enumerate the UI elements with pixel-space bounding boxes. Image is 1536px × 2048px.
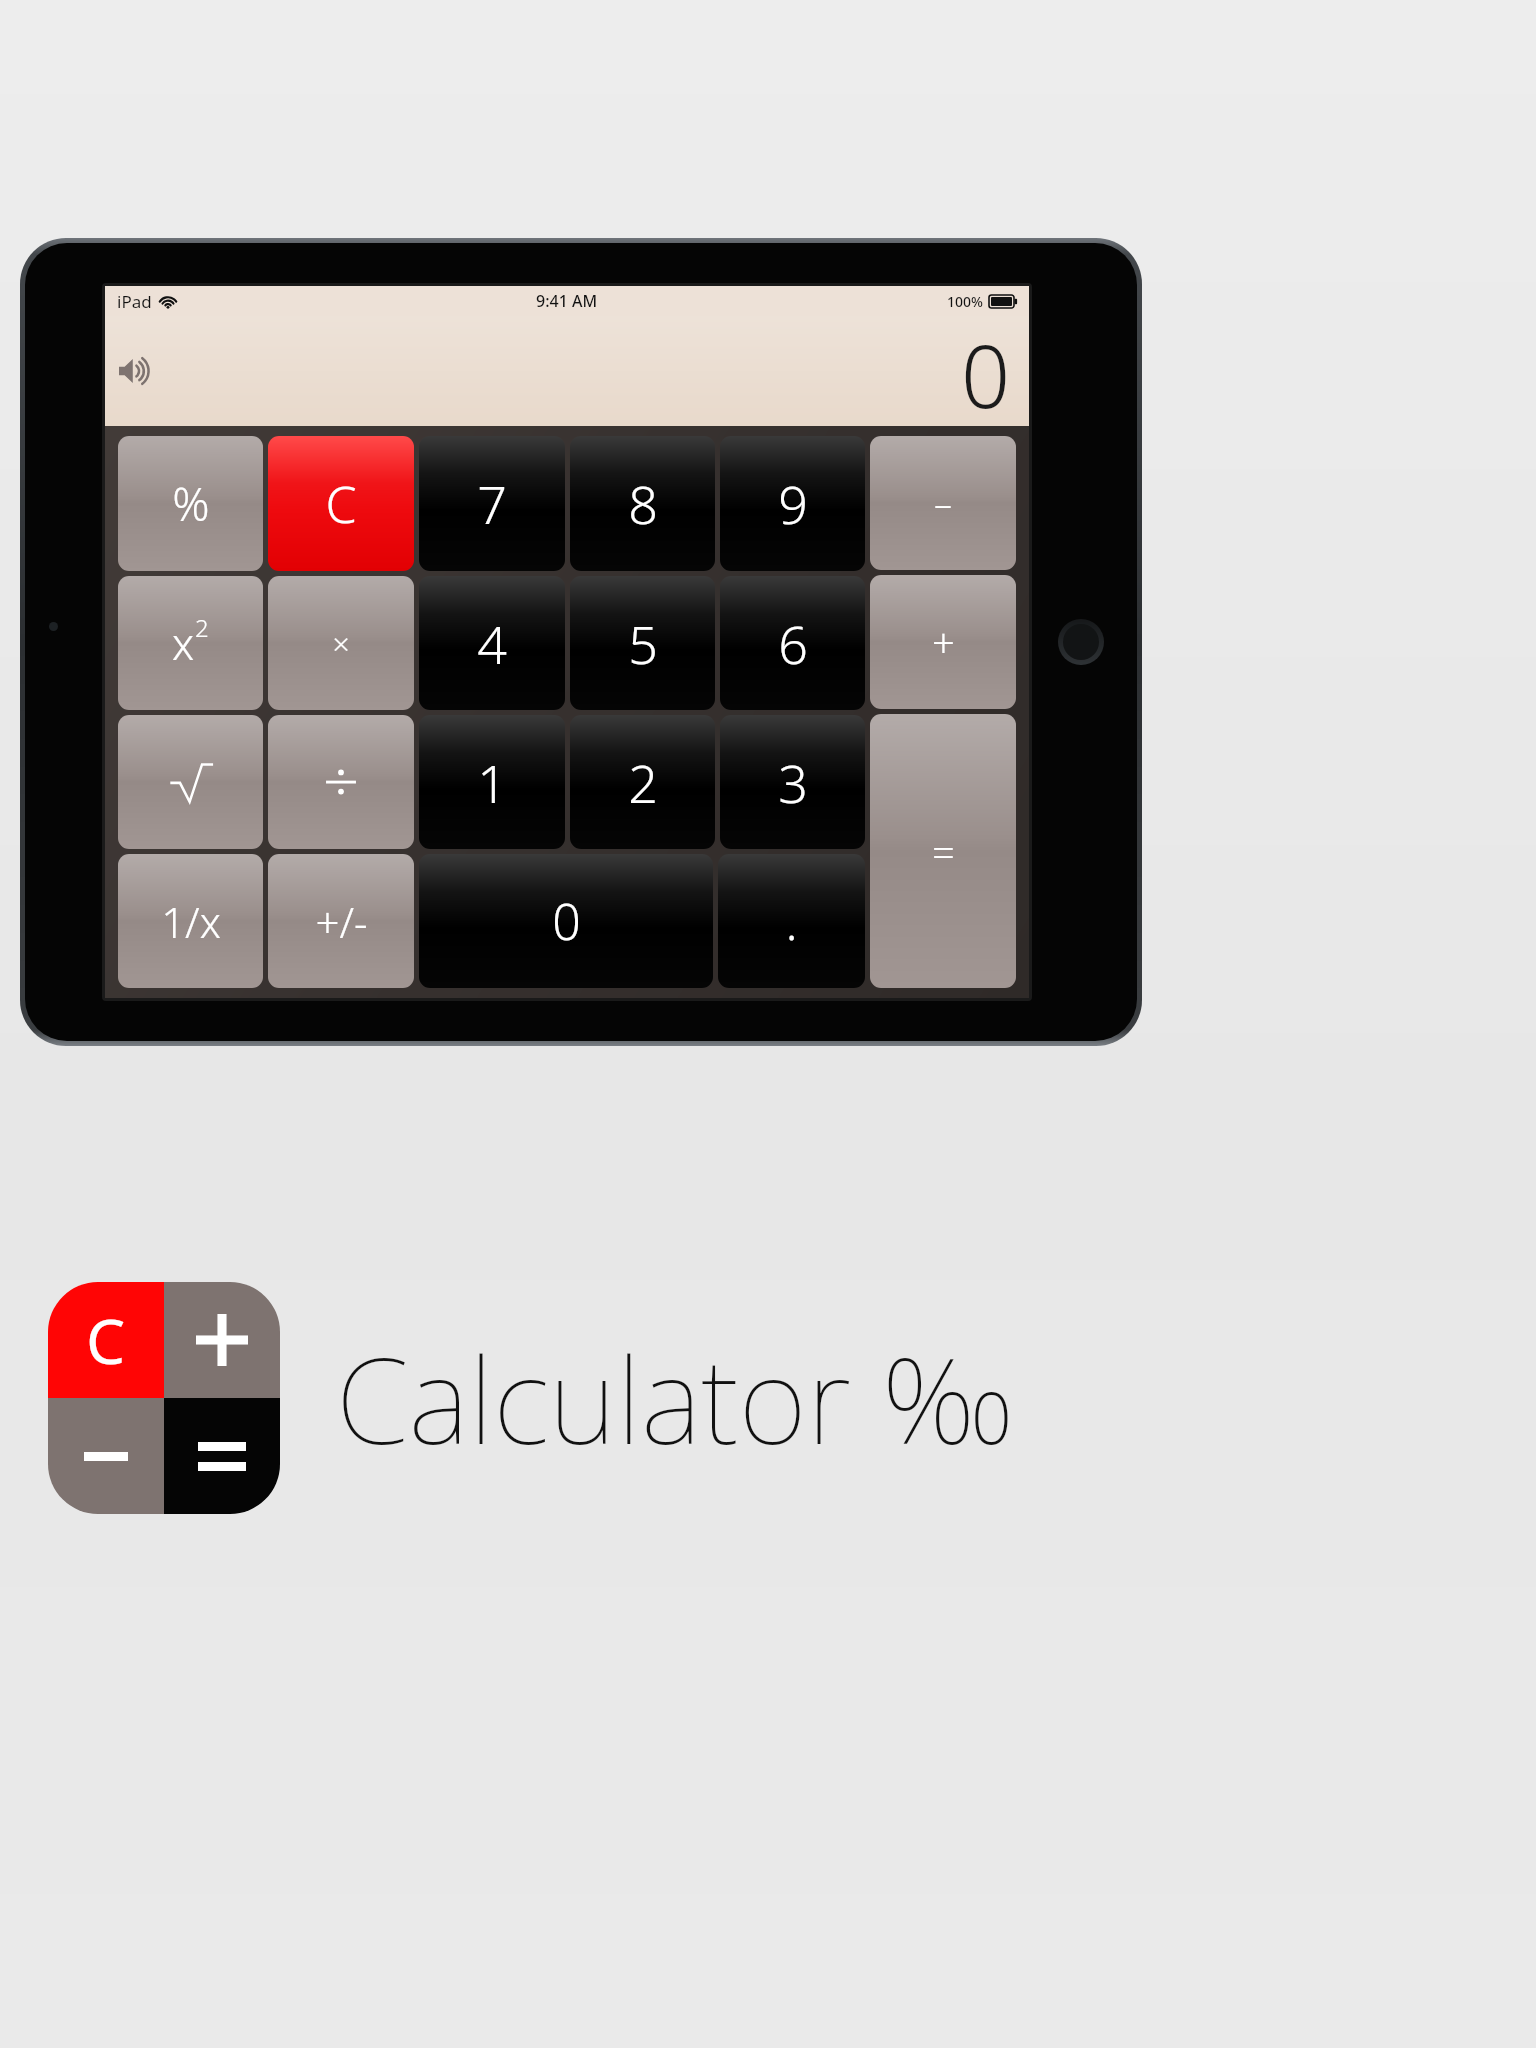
staticText: × <box>332 623 350 664</box>
button[interactable]: 6 <box>720 576 865 710</box>
button[interactable]: 7 <box>419 436 565 571</box>
button[interactable] <box>268 715 414 849</box>
staticText: +/- <box>315 893 368 950</box>
button[interactable]: 3 <box>720 715 865 849</box>
staticText: 3 <box>778 747 808 818</box>
staticText: 0 <box>961 316 1011 426</box>
button[interactable]: +/- <box>268 854 414 988</box>
staticText: C <box>86 1298 126 1382</box>
button[interactable]: x <box>118 576 263 710</box>
staticText: + <box>932 615 955 669</box>
button[interactable]: 8 <box>570 436 715 571</box>
button[interactable]: % <box>118 436 263 571</box>
button[interactable]: Sound <box>119 358 153 384</box>
button[interactable]: 1 <box>419 715 565 849</box>
button[interactable]: + <box>870 575 1016 709</box>
button[interactable]: 1/x <box>118 854 263 988</box>
staticText: 8 <box>628 468 658 539</box>
staticText: . <box>785 887 798 955</box>
staticText: 0 <box>552 887 581 955</box>
button[interactable]: 9 <box>720 436 865 571</box>
staticText: 2 <box>195 611 209 644</box>
staticText: 1/x <box>161 893 221 950</box>
staticText: 6 <box>778 608 808 679</box>
button[interactable]: = <box>870 714 1016 988</box>
staticText: – <box>934 479 952 528</box>
button[interactable]: . <box>718 854 865 988</box>
staticText: 2 <box>628 747 658 818</box>
staticText: 4 <box>477 608 507 679</box>
button[interactable]: 0 <box>419 854 713 988</box>
staticText: 9 <box>778 468 808 539</box>
button[interactable]: – <box>870 436 1016 570</box>
staticText: x <box>172 613 195 673</box>
staticText: = <box>932 824 955 878</box>
staticText: 1 <box>477 747 507 818</box>
staticText: C <box>325 470 357 538</box>
button[interactable]: × <box>268 576 414 710</box>
staticText: 5 <box>628 608 658 679</box>
other: Home <box>1058 619 1104 665</box>
button[interactable]: 2 <box>570 715 715 849</box>
staticText: 7 <box>477 468 507 539</box>
button[interactable]: 5 <box>570 576 715 710</box>
staticText: 100% <box>947 292 983 311</box>
staticText: 9:41 AM <box>536 290 598 312</box>
button[interactable]: Calculator app icon <box>48 1282 280 1514</box>
button[interactable]: C <box>268 436 414 571</box>
staticText: Calculator ‰ <box>336 1318 1015 1479</box>
button[interactable] <box>118 715 263 849</box>
button[interactable]: 4 <box>419 576 565 710</box>
staticText: iPad <box>117 290 152 313</box>
staticText: % <box>172 472 210 535</box>
